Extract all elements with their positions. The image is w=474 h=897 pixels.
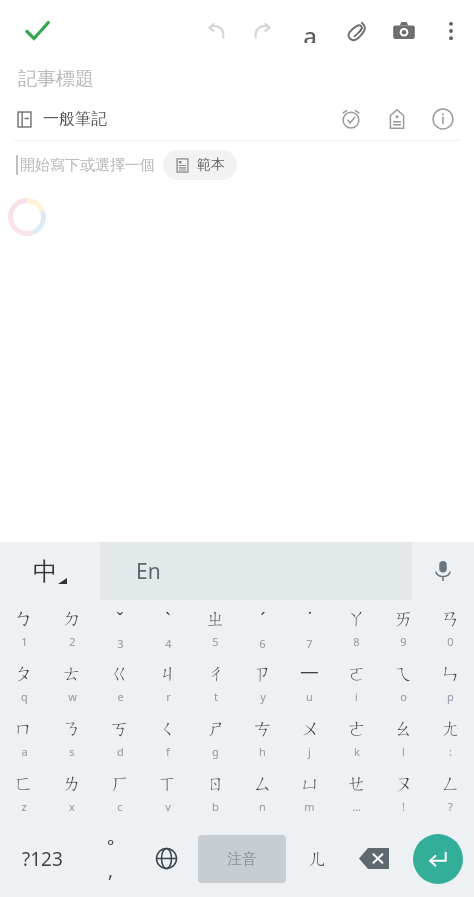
button[interactable]: ㄣ: [427, 655, 474, 710]
button[interactable]: ㄈ: [0, 765, 48, 820]
button[interactable]: ㄅ: [0, 600, 48, 655]
button[interactable]: ㄛ: [333, 655, 380, 710]
button[interactable]: ㄆ: [0, 655, 48, 710]
button[interactable]: Switch language: [0, 542, 100, 600]
button[interactable]: ˋ: [144, 600, 192, 655]
button[interactable]: ?123: [0, 820, 84, 897]
button[interactable]: Camera: [380, 7, 427, 54]
staticText: ㄇ: [14, 717, 34, 741]
button[interactable]: ㄗ: [239, 655, 286, 710]
staticText: 範本: [197, 156, 225, 174]
staticText: ㄖ: [206, 772, 226, 796]
staticText: a: [21, 744, 28, 759]
staticText: :: [449, 744, 452, 759]
staticText: x: [69, 799, 75, 814]
button[interactable]: Note info: [428, 104, 458, 134]
staticText: ㄩ: [300, 772, 320, 796]
button[interactable]: ˇ: [96, 600, 144, 655]
button[interactable]: ㄟ: [380, 655, 427, 710]
staticText: 一般筆記: [43, 109, 107, 129]
button[interactable]: ㄤ: [427, 710, 474, 765]
staticText: ㄜ: [347, 717, 367, 741]
staticText: 開始寫下或選擇一個: [20, 156, 155, 175]
staticText: …: [352, 799, 361, 814]
button[interactable]: Change keyboard: [138, 820, 194, 897]
button[interactable]: ㄙ: [239, 765, 286, 820]
button[interactable]: ㄠ: [380, 710, 427, 765]
staticText: ㄕ: [206, 717, 226, 741]
button[interactable]: En: [100, 542, 412, 600]
button[interactable]: ㄚ: [333, 600, 380, 655]
button[interactable]: ㄐ: [144, 655, 192, 710]
button[interactable]: °: [84, 820, 138, 897]
button[interactable]: More options: [427, 7, 474, 54]
button[interactable]: ㄊ: [48, 655, 96, 710]
button[interactable]: ㄡ: [380, 765, 427, 820]
button[interactable]: ㄎ: [96, 710, 144, 765]
staticText: q: [21, 689, 28, 704]
button[interactable]: ㄥ: [427, 765, 474, 820]
button[interactable]: 一: [286, 655, 333, 710]
button[interactable]: Reminder: [336, 104, 366, 134]
staticText: ㄙ: [253, 772, 273, 796]
button[interactable]: ㄒ: [144, 765, 192, 820]
button[interactable]: ㄍ: [96, 655, 144, 710]
staticText: ㄠ: [394, 717, 414, 741]
button[interactable]: Tags: [382, 104, 412, 134]
button[interactable]: ㄕ: [192, 710, 239, 765]
button[interactable]: ㄦ: [290, 820, 346, 897]
staticText: o: [400, 689, 407, 704]
staticText: v: [165, 799, 171, 814]
button[interactable]: 一般筆記: [16, 109, 113, 129]
staticText: 3: [117, 636, 124, 651]
staticText: 中: [33, 556, 58, 587]
button[interactable]: Redo: [239, 7, 286, 54]
button[interactable]: ㄉ: [48, 600, 96, 655]
staticText: n: [259, 799, 266, 814]
button[interactable]: ㄑ: [144, 710, 192, 765]
button[interactable]: Undo: [192, 7, 239, 54]
staticText: 一: [300, 662, 319, 686]
staticText: ㄓ: [206, 607, 226, 631]
button[interactable]: ㄢ: [427, 600, 474, 655]
button[interactable]: ㄨ: [286, 710, 333, 765]
button[interactable]: ㄋ: [48, 710, 96, 765]
button[interactable]: Delete: [346, 820, 402, 897]
button[interactable]: ㄏ: [96, 765, 144, 820]
staticText: °: [107, 834, 115, 857]
staticText: ㄡ: [394, 772, 414, 796]
staticText: k: [354, 744, 360, 759]
staticText: ˙: [308, 607, 312, 633]
button[interactable]: Enter: [413, 834, 463, 884]
button[interactable]: 範本: [163, 150, 237, 180]
staticText: 4: [165, 636, 172, 651]
staticText: 7: [306, 636, 313, 651]
button[interactable]: Attach file: [333, 7, 380, 54]
button[interactable]: Save note: [12, 5, 62, 55]
button[interactable]: ˙: [286, 600, 333, 655]
staticText: ㄥ: [441, 772, 461, 796]
button[interactable]: Text formatting: [286, 7, 333, 54]
staticText: z: [21, 799, 27, 814]
staticText: ㄅ: [14, 607, 34, 631]
button[interactable]: ㄓ: [192, 600, 239, 655]
button[interactable]: Voice input: [412, 542, 474, 600]
staticText: ?123: [22, 846, 63, 872]
staticText: ㄒ: [158, 772, 178, 796]
staticText: ㄟ: [394, 662, 414, 686]
staticText: ㄦ: [308, 847, 328, 871]
button[interactable]: ˊ: [239, 600, 286, 655]
staticText: 5: [212, 634, 219, 649]
button[interactable]: ㄩ: [286, 765, 333, 820]
button[interactable]: ㄌ: [48, 765, 96, 820]
button[interactable]: ㄝ: [333, 765, 380, 820]
button[interactable]: ㄜ: [333, 710, 380, 765]
button[interactable]: 注音: [198, 835, 286, 883]
button[interactable]: ㄘ: [239, 710, 286, 765]
button[interactable]: ㄔ: [192, 655, 239, 710]
button[interactable]: ㄖ: [192, 765, 239, 820]
button[interactable]: ㄞ: [380, 600, 427, 655]
staticText: m: [304, 799, 315, 814]
staticText: w: [68, 689, 77, 704]
button[interactable]: ㄇ: [0, 710, 48, 765]
